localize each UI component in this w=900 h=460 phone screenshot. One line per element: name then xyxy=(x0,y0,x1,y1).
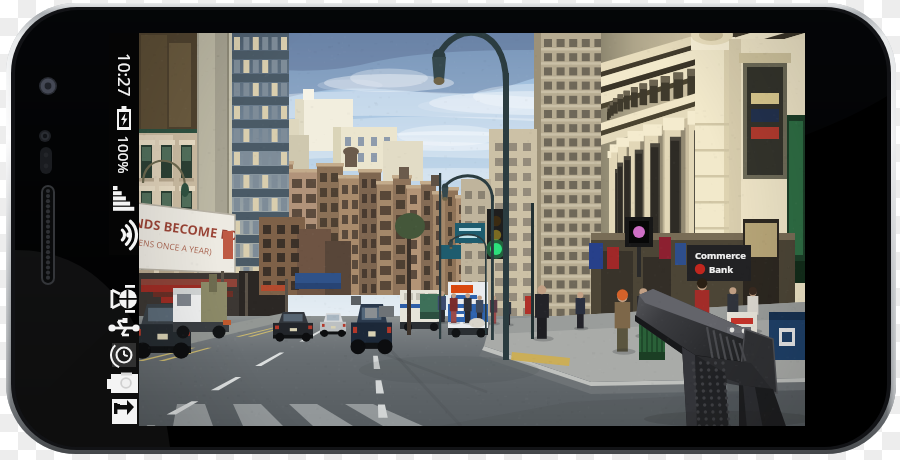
button[interactable]: Camera viewfinder xyxy=(0,0,900,460)
